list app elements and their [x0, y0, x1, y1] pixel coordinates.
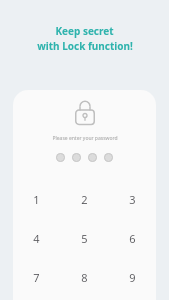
button[interactable]: 2: [60, 180, 108, 219]
staticText: 8: [81, 270, 88, 285]
button[interactable]: 5: [60, 219, 108, 258]
button[interactable]: 3: [108, 180, 156, 219]
button[interactable]: 9: [108, 258, 156, 297]
staticText: with Lock function!: [37, 39, 133, 53]
staticText: 3: [129, 192, 136, 207]
staticText: 5: [81, 231, 88, 246]
button[interactable]: 8: [60, 258, 108, 297]
staticText: Keep secret: [55, 24, 114, 38]
staticText: Please enter your password: [52, 135, 118, 142]
staticText: 9: [129, 270, 136, 285]
button[interactable]: 7: [13, 258, 60, 297]
button[interactable]: 4: [13, 219, 60, 258]
other: Locked: [75, 100, 95, 125]
staticText: 2: [81, 192, 88, 207]
staticText: 7: [33, 270, 40, 285]
staticText: 4: [33, 231, 40, 246]
button[interactable]: 6: [108, 219, 156, 258]
button[interactable]: 1: [13, 180, 60, 219]
staticText: 6: [129, 231, 136, 246]
staticText: 1: [33, 192, 40, 207]
